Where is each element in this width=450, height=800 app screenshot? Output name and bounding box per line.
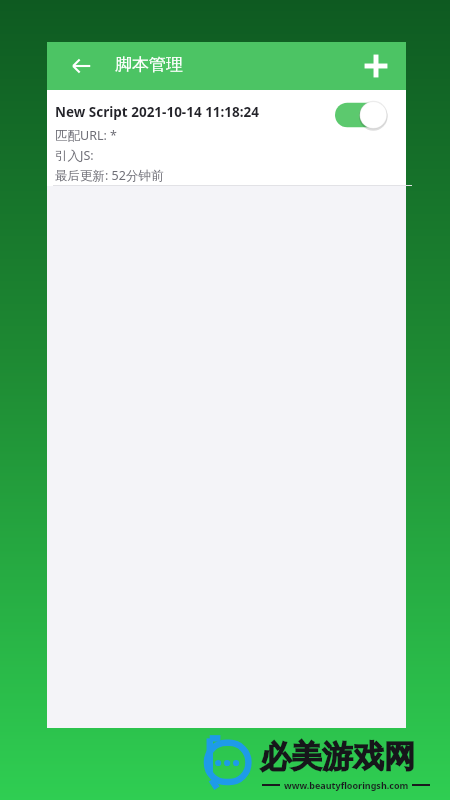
button[interactable]: New Script 2021-10-14 11:18:24 [47,90,406,186]
staticText: 必美游戏网 [260,737,415,776]
staticText: 最后更新: 52分钟前 [55,167,164,184]
staticText: New Script 2021-10-14 11:18:24 [55,103,260,121]
staticText: 脚本管理 [115,54,183,75]
button[interactable]: Add script [352,42,400,90]
staticText: 匹配URL: * [55,127,117,144]
button[interactable]: Back [57,42,105,90]
button[interactable]: Enable script [335,98,397,132]
staticText: www.beautyflooringsh.com [284,779,409,791]
staticText: 引入JS: [55,147,94,164]
